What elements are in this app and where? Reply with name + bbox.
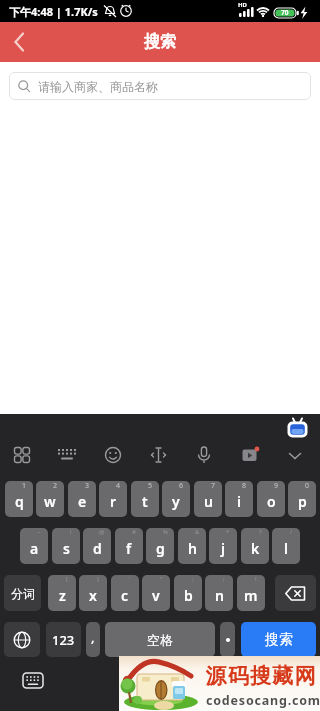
staticText: d [93,539,102,558]
button[interactable]: 9 [257,481,285,517]
staticText: w [44,492,56,511]
staticText: 123 [52,631,75,649]
button[interactable]: 123 [46,622,81,657]
staticText: z [59,586,66,605]
button[interactable]: # [115,528,143,564]
button[interactable]: 4 [99,481,127,517]
staticText: q [15,492,24,511]
button[interactable]: / [272,528,300,564]
staticText: @ [99,528,105,536]
button[interactable]: 3 [68,481,96,517]
button[interactable]: ( [48,575,76,611]
button[interactable] [0,22,40,62]
staticText: l [284,539,288,558]
staticText: j [221,539,225,558]
staticText: & [195,528,200,536]
button[interactable]: ! [237,575,265,611]
staticText: y [172,492,180,511]
button[interactable]: ) [79,575,107,611]
button[interactable]: 搜索 [241,622,316,657]
button[interactable]: " [142,575,170,611]
staticText: 源码搜藏网 [205,663,316,689]
staticText: a [30,539,39,558]
button[interactable]: 空格 [105,622,215,657]
button[interactable]: ? [241,528,269,564]
staticText: 6 [179,481,184,491]
staticText: u [204,492,213,511]
button[interactable]: ; [205,575,233,611]
button[interactable]: * [209,528,237,564]
button[interactable] [4,622,40,657]
staticText: h [188,539,197,558]
button[interactable]: 8 [225,481,253,517]
staticText: ! [255,575,257,583]
staticText: o [267,492,276,511]
staticText: b [184,586,193,605]
staticText: 空格 [147,632,173,648]
button[interactable]: & [178,528,206,564]
staticText: e [78,492,87,511]
button[interactable]: 7 [194,481,222,517]
button[interactable]: 请输入商家、商品名称 [9,72,311,100]
staticText: 0 [305,481,310,491]
staticText: ; [223,575,225,583]
staticText: 下午4:48 | 1.7K/s [9,4,98,19]
staticText: 70 [281,8,289,17]
button[interactable] [220,622,235,657]
staticText: i [237,492,241,511]
staticText: 9 [274,481,279,491]
staticText: HD [238,1,247,9]
staticText: m [244,586,258,605]
staticText: # [132,528,136,536]
staticText: x [89,586,97,605]
staticText: 2 [53,481,58,491]
button[interactable]: 0 [288,481,316,517]
button[interactable]: @ [83,528,111,564]
staticText: ' [129,575,131,583]
staticText: ? [259,528,262,536]
staticText: r [110,492,117,511]
staticText: " [160,575,163,583]
staticText: / [290,528,293,536]
staticText: ( [66,575,68,583]
staticText: 请输入商家、商品名称 [38,79,158,94]
staticText: : [192,575,194,583]
staticText: c [121,586,129,605]
staticText: f [126,539,132,558]
staticText: 3 [85,481,90,491]
button[interactable]: 2 [36,481,64,517]
staticText: codesocang.com [206,692,320,709]
button[interactable]: % [146,528,174,564]
staticText: , [91,628,95,646]
staticText: 分词 [11,586,35,601]
staticText: v [152,586,160,605]
button[interactable]: 分词 [4,575,41,611]
button[interactable]: 6 [162,481,190,517]
staticText: ~ [37,528,41,536]
button[interactable]: ~ [20,528,48,564]
button[interactable] [275,575,316,611]
button[interactable]: : [174,575,202,611]
button[interactable] [22,671,46,693]
staticText: p [298,492,307,511]
staticText: k [251,539,260,558]
button[interactable]: 5 [131,481,159,517]
staticText: 8 [242,481,247,491]
button[interactable]: , [86,622,100,657]
button[interactable]: 1 [5,481,33,517]
staticText: s [63,539,70,558]
staticText: n [215,586,224,605]
staticText: ) [97,575,99,583]
staticText: 4 [116,481,121,491]
staticText: t [142,492,148,511]
staticText: g [156,539,165,558]
staticText: % [163,528,168,536]
button[interactable]: ! [52,528,80,564]
staticText: 5 [148,481,153,491]
staticText: 7 [211,481,216,491]
staticText: 1 [22,481,27,491]
staticText: 搜索 [265,631,293,649]
button[interactable]: ' [111,575,139,611]
staticText: ! [70,528,72,536]
staticText: 搜索 [144,32,176,52]
